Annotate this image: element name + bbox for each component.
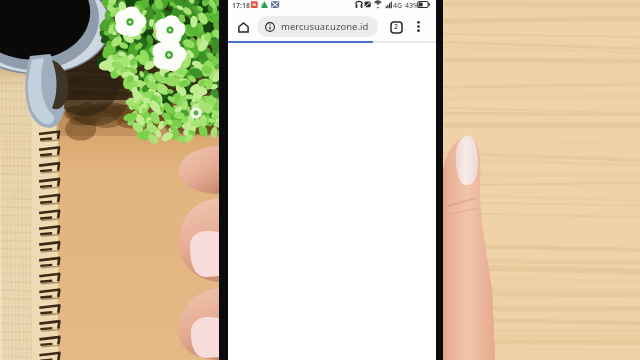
staticText: 17:18 xyxy=(232,1,250,11)
button[interactable]: More options xyxy=(409,17,427,35)
staticText: 43% xyxy=(405,1,419,11)
staticText: 2 xyxy=(394,22,399,32)
staticText: 4G xyxy=(393,1,403,11)
button[interactable]: Home xyxy=(232,16,254,38)
staticText: mercusuar.uzone.id xyxy=(281,20,369,33)
button[interactable]: mercusuar.uzone.id xyxy=(257,16,378,37)
button[interactable]: Tabs xyxy=(387,18,405,36)
